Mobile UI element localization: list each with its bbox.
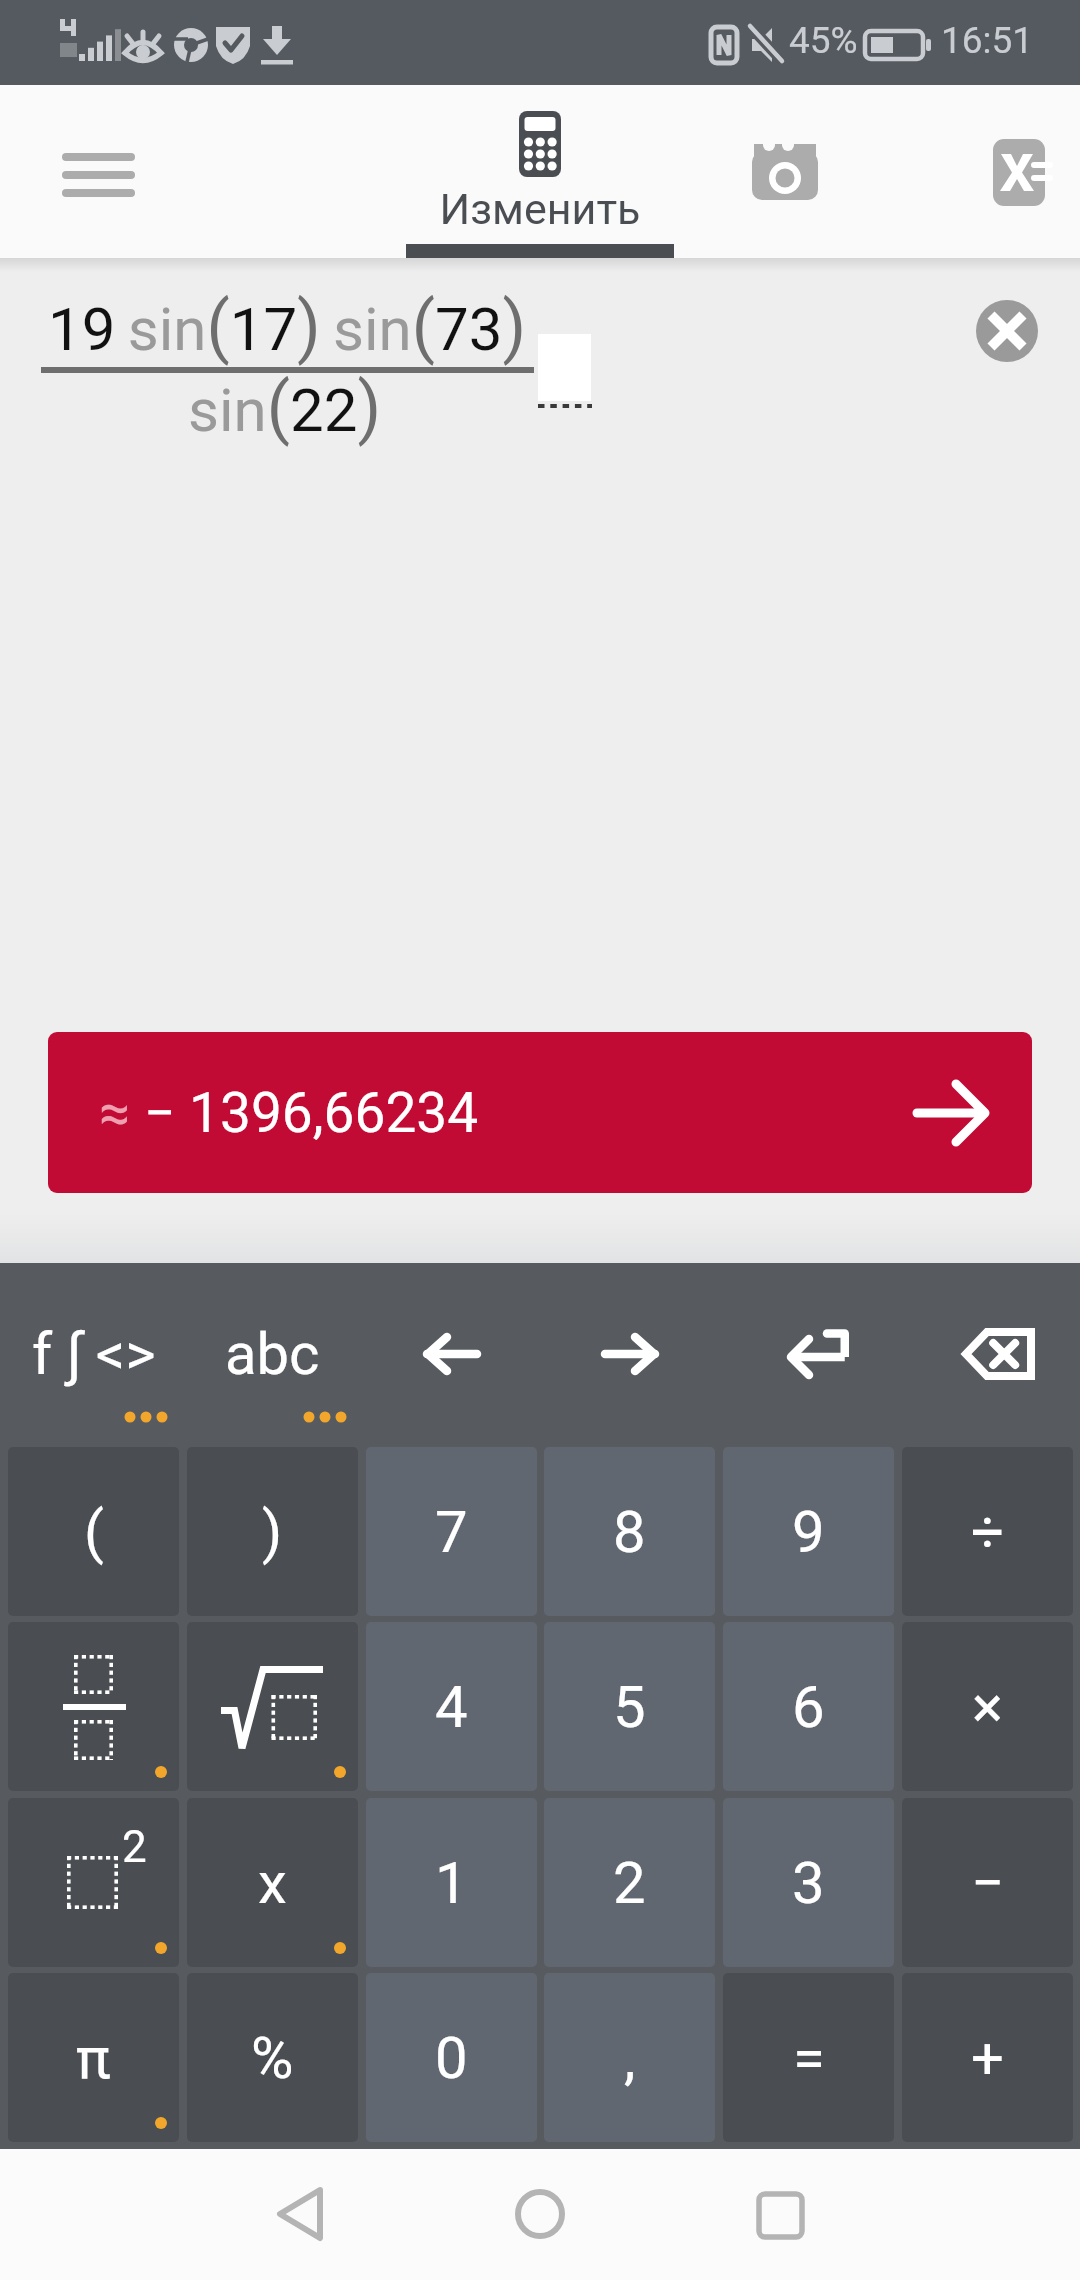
button[interactable]: π (8, 1973, 179, 2142)
staticText: π (76, 2024, 111, 2092)
staticText: 16:51 (941, 19, 1034, 62)
button[interactable]: 5 (544, 1622, 715, 1791)
button[interactable]: Menu (35, 110, 163, 233)
staticText: 5 (613, 1673, 646, 1741)
button[interactable] (187, 1622, 358, 1791)
button[interactable]: 2 (8, 1798, 179, 1967)
staticText: 6 (792, 1673, 825, 1741)
button[interactable] (8, 1622, 179, 1791)
button[interactable]: ) (187, 1447, 358, 1616)
button[interactable]: ÷ (902, 1447, 1073, 1616)
button[interactable]: × (902, 1622, 1073, 1791)
staticText: 19 sin(17) sin(73) (48, 287, 527, 367)
staticText: = (793, 2024, 825, 2092)
staticText: + (971, 2024, 1004, 2092)
button[interactable]: f ∫ <> (8, 1263, 179, 1447)
button[interactable]: − (902, 1798, 1073, 1967)
staticText: 3 (792, 1849, 825, 1917)
staticText: 8 (613, 1498, 646, 1566)
button[interactable]: Изменить (406, 85, 674, 258)
button[interactable]: 6 (723, 1622, 894, 1791)
staticText: x (258, 1849, 287, 1917)
staticText: ) (262, 1498, 283, 1566)
button[interactable]: 7 (366, 1447, 537, 1616)
button[interactable]: 3 (723, 1798, 894, 1967)
button[interactable]: + (902, 1973, 1073, 2142)
button[interactable]: Move left (366, 1263, 537, 1447)
button[interactable]: Clear (961, 285, 1053, 377)
button[interactable]: abc (187, 1263, 358, 1447)
staticText: 45% (789, 19, 858, 62)
button[interactable]: x (187, 1798, 358, 1967)
staticText: − (971, 1849, 1005, 1917)
staticText: − 1396,66234 (144, 1081, 479, 1145)
staticText: 9 (792, 1498, 825, 1566)
staticText: f ∫ <> (32, 1320, 156, 1388)
staticText: sin(22) (188, 368, 382, 448)
button[interactable]: , (544, 1973, 715, 2142)
staticText: , (624, 2024, 636, 2092)
button[interactable]: Backspace (902, 1263, 1073, 1447)
button[interactable]: Move right (544, 1263, 715, 1447)
button[interactable]: Back (220, 2149, 380, 2280)
staticText: Изменить (406, 184, 674, 234)
button[interactable]: % (187, 1973, 358, 2142)
button[interactable]: Equation solver (993, 139, 1055, 206)
staticText: 7 (435, 1498, 468, 1566)
button[interactable]: Home (460, 2149, 620, 2280)
button[interactable]: 9 (723, 1447, 894, 1616)
staticText: ≈ (99, 1081, 144, 1145)
button[interactable]: Recents (700, 2149, 860, 2280)
staticText: × (972, 1673, 1003, 1741)
staticText: 1 (435, 1849, 468, 1917)
staticText: ÷ (971, 1498, 1005, 1566)
staticText: abc (225, 1320, 320, 1388)
button[interactable]: 1 (366, 1798, 537, 1967)
button[interactable]: 4 (366, 1622, 537, 1791)
staticText: ( (84, 1498, 104, 1566)
button[interactable]: 8 (544, 1447, 715, 1616)
button[interactable]: = (723, 1973, 894, 2142)
button[interactable]: 0 (366, 1973, 537, 2142)
staticText: 4 (435, 1673, 468, 1741)
button[interactable]: Camera (700, 110, 870, 233)
staticText: 2 (613, 1849, 646, 1917)
staticText: 0 (435, 2024, 468, 2092)
button[interactable]: ≈ (48, 1032, 1032, 1193)
staticText: 2 (122, 1821, 147, 1873)
button[interactable]: Enter (723, 1263, 894, 1447)
button[interactable]: 2 (544, 1798, 715, 1967)
button[interactable]: ( (8, 1447, 179, 1616)
staticText: % (251, 2024, 294, 2092)
